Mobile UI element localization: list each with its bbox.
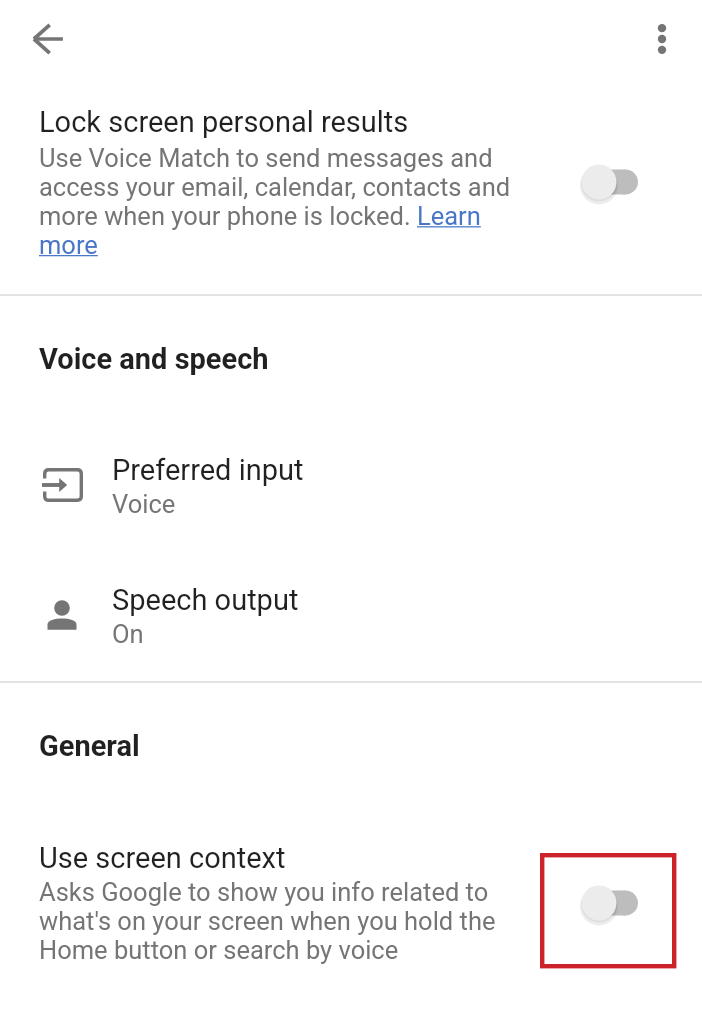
button[interactable]: Preferred input — [0, 437, 702, 533]
staticText: General — [39, 729, 140, 763]
staticText: Asks Google to show you info related to … — [39, 877, 509, 965]
button[interactable]: Speech output — [0, 567, 702, 663]
button[interactable]: Lock screen personal results — [0, 86, 702, 276]
staticText: Use screen context — [39, 841, 286, 875]
staticText: Preferred input — [112, 453, 304, 487]
staticText: On — [112, 619, 144, 649]
staticText: Voice and speech — [39, 342, 269, 376]
button[interactable]: Use screen context switch — [568, 879, 640, 927]
button[interactable]: Use screen context — [0, 825, 702, 995]
button[interactable]: More options — [630, 7, 694, 71]
staticText: Speech output — [112, 583, 299, 617]
staticText: Use Voice Match to send messages and acc… — [39, 143, 521, 260]
staticText: Voice — [112, 489, 176, 519]
button[interactable]: Back — [16, 7, 80, 71]
staticText: Lock screen personal results — [39, 105, 409, 139]
button[interactable]: Lock screen personal results switch — [568, 158, 640, 206]
